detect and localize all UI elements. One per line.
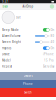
staticText: 15 Pro — [44, 59, 54, 62]
button[interactable]: Haptics — [0, 45, 56, 51]
staticText: Phone — [23, 82, 33, 86]
button[interactable]: Switch — [0, 88, 56, 97]
button[interactable]: Screen Bright — [0, 39, 56, 45]
staticText: Alarm Volume — [2, 34, 21, 38]
button[interactable]: Repeat — [0, 63, 56, 69]
staticText: iPhone — [43, 52, 54, 56]
button[interactable]: Sleep Mode — [0, 27, 56, 33]
staticText: Switch — [24, 91, 32, 94]
button[interactable]: Phone — [0, 80, 56, 88]
button[interactable]: Alarm Volume — [0, 33, 56, 39]
staticText: Model — [2, 59, 11, 62]
staticText: 9:41 — [2, 0, 9, 3]
staticText: AirDrop — [22, 5, 33, 8]
staticText: On — [50, 46, 54, 50]
staticText: Haptics — [2, 46, 11, 50]
staticText: 80 — [50, 34, 54, 38]
button[interactable]: Devices — [0, 72, 56, 80]
staticText: Screen Bright — [2, 40, 21, 44]
staticText: Repeat — [2, 65, 12, 68]
button[interactable]: Model — [0, 57, 56, 63]
button[interactable]: Back — [1, 4, 9, 9]
staticText: Device — [2, 52, 10, 56]
staticText: Devices — [23, 74, 32, 78]
staticText: 40 — [50, 40, 54, 44]
staticText: Sleep Mode — [2, 28, 19, 32]
button[interactable]: Device — [0, 51, 56, 57]
staticText: Start — [16, 16, 21, 19]
staticText: Back — [2, 5, 7, 8]
staticText: On — [50, 28, 54, 32]
staticText: Every day — [43, 65, 54, 68]
button[interactable]: Profile — [49, 4, 55, 9]
